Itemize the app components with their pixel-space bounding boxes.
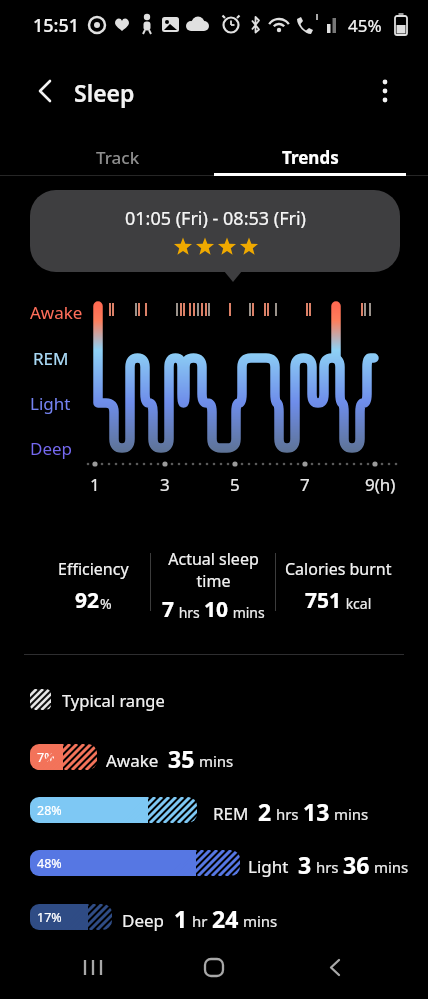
staticText: 01:05 (Fri) - 08:53 (Fri) xyxy=(125,206,306,231)
staticText: Actual sleep time xyxy=(168,548,259,592)
button[interactable]: Track xyxy=(21,138,214,176)
staticText: Deep xyxy=(30,437,73,460)
staticText: Light xyxy=(30,392,71,415)
staticText: Efficiency xyxy=(58,558,129,580)
button[interactable] xyxy=(314,946,356,988)
staticText: Awake xyxy=(30,301,83,324)
staticText: Deep xyxy=(122,909,165,932)
staticText: REM xyxy=(33,347,69,370)
staticText: mins xyxy=(239,911,278,931)
button[interactable] xyxy=(193,946,235,988)
staticText: Track xyxy=(96,146,140,169)
staticText: 1 xyxy=(174,903,188,930)
staticText: hr xyxy=(188,911,212,931)
staticText: 35 xyxy=(168,743,195,770)
staticText: 13 xyxy=(303,796,330,823)
staticText: 36 xyxy=(343,849,370,876)
staticText: mins xyxy=(370,857,409,877)
staticText: hrs xyxy=(175,603,204,622)
button[interactable] xyxy=(28,74,62,108)
staticText: 92 xyxy=(75,586,100,615)
staticText: 9(h) xyxy=(365,473,396,496)
staticText: 5 xyxy=(230,473,240,496)
staticText: 7 xyxy=(162,595,175,624)
staticText: % xyxy=(100,594,112,613)
staticText: 2 xyxy=(258,796,272,823)
staticText: 3 xyxy=(160,473,170,496)
staticText: mins xyxy=(330,804,369,824)
staticText: Trends xyxy=(282,146,339,169)
staticText: Sleep xyxy=(74,77,135,108)
staticText: 28% xyxy=(37,802,62,819)
staticText: 751 xyxy=(305,586,342,615)
staticText: Awake xyxy=(106,749,159,772)
staticText: 1 xyxy=(90,473,100,496)
staticText: mins xyxy=(229,603,265,622)
staticText: hrs xyxy=(272,804,303,824)
staticText: 15:51 xyxy=(33,13,80,38)
staticText: 7 xyxy=(300,473,310,496)
staticText: hrs xyxy=(312,857,343,877)
staticText: mins xyxy=(195,751,234,771)
button[interactable]: Trends xyxy=(214,138,406,176)
staticText: 24 xyxy=(212,903,239,930)
staticText: REM xyxy=(213,802,249,825)
staticText: Calories burnt xyxy=(285,558,392,580)
staticText: 48% xyxy=(37,855,62,872)
staticText: Light xyxy=(248,855,289,878)
staticText: 10 xyxy=(204,595,229,624)
button[interactable] xyxy=(72,946,114,988)
staticText: kcal xyxy=(342,594,372,613)
staticText: 7% xyxy=(37,749,55,766)
staticText: 45% xyxy=(348,14,382,37)
staticText: 3 xyxy=(298,849,312,876)
staticText: Typical range xyxy=(62,689,165,711)
button[interactable] xyxy=(368,74,402,108)
staticText: 17% xyxy=(37,909,62,926)
